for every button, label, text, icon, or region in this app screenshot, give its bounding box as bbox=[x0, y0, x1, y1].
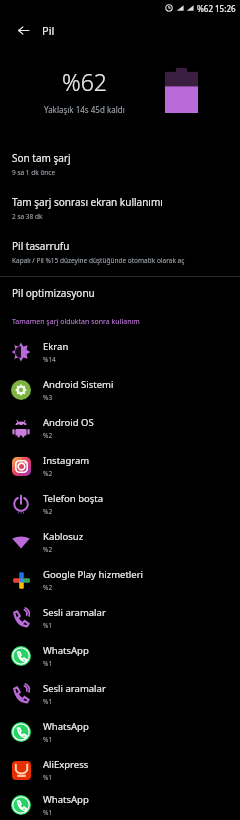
button[interactable]: Sesli aramalar bbox=[0, 599, 240, 637]
staticText: Pil tasarrufu bbox=[12, 239, 70, 253]
button[interactable]: Tam şarj sonrası ekran kullanımı bbox=[0, 186, 240, 230]
staticText: %62 bbox=[62, 66, 107, 97]
staticText: Kablosuz bbox=[43, 530, 84, 543]
button[interactable]: Ekran bbox=[0, 333, 240, 371]
staticText: Pil optimizasyonu bbox=[12, 286, 95, 300]
staticText: Sesli aramalar bbox=[43, 606, 106, 619]
staticText: %14 bbox=[43, 355, 56, 364]
button[interactable]: Android OS bbox=[0, 409, 240, 447]
button[interactable]: AliExpress bbox=[0, 751, 240, 789]
staticText: %1 bbox=[43, 773, 53, 782]
staticText: Yaklaşık 14s 45d kaldı bbox=[44, 104, 125, 115]
staticText: Ekran bbox=[43, 340, 69, 353]
staticText: Tam şarj sonrası ekran kullanımı bbox=[12, 195, 163, 209]
staticText: %2 bbox=[43, 583, 53, 592]
button[interactable]: Pil tasarrufu bbox=[0, 230, 240, 274]
staticText: %1 bbox=[43, 659, 53, 668]
staticText: Son tam şarj bbox=[12, 151, 71, 165]
staticText: %62 15:26 bbox=[197, 3, 236, 14]
button[interactable]: Android Sistemi bbox=[0, 371, 240, 409]
staticText: %3 bbox=[43, 393, 53, 402]
staticText: AliExpress bbox=[43, 758, 89, 771]
staticText: Sesli aramalar bbox=[43, 682, 106, 695]
button[interactable]: WhatsApp bbox=[0, 789, 240, 820]
staticText: Google Play hizmetleri bbox=[43, 568, 144, 581]
staticText: 2 sa 38 dk bbox=[12, 212, 43, 221]
staticText: %2 bbox=[43, 545, 53, 554]
staticText: WhatsApp bbox=[43, 644, 89, 657]
staticText: %1 bbox=[43, 735, 53, 744]
staticText: %1 bbox=[43, 621, 53, 630]
button[interactable]: Pil optimizasyonu bbox=[0, 277, 240, 309]
button[interactable]: Son tam şarj bbox=[0, 142, 240, 186]
button[interactable]: WhatsApp bbox=[0, 637, 240, 675]
button[interactable]: Instagram bbox=[0, 447, 240, 485]
staticText: %2 bbox=[43, 431, 53, 440]
staticText: WhatsApp bbox=[43, 793, 89, 806]
button[interactable]: WhatsApp bbox=[0, 713, 240, 751]
staticText: Kapalı / Pil %15 düzeyine düştüğünde oto… bbox=[12, 256, 185, 265]
button[interactable]: Google Play hizmetleri bbox=[0, 561, 240, 599]
staticText: 9 sa 1 dk önce bbox=[12, 168, 56, 177]
staticText: %1 bbox=[43, 808, 53, 817]
button[interactable]: Kablosuz bbox=[0, 523, 240, 561]
staticText: Tamamen şarj olduktan sonra kullanım bbox=[12, 317, 140, 327]
staticText: WhatsApp bbox=[43, 720, 89, 733]
button[interactable]: Sesli aramalar bbox=[0, 675, 240, 713]
staticText: Telefon boşta bbox=[43, 492, 104, 505]
staticText: %2 bbox=[43, 469, 53, 478]
staticText: Instagram bbox=[43, 454, 90, 467]
staticText: %1 bbox=[43, 697, 53, 706]
button[interactable]: Telefon boşta bbox=[0, 485, 240, 523]
staticText: Pil bbox=[42, 23, 55, 38]
button[interactable]: Geri bbox=[12, 19, 34, 41]
staticText: Android Sistemi bbox=[43, 378, 114, 391]
staticText: %2 bbox=[43, 507, 53, 516]
staticText: Android OS bbox=[43, 416, 94, 429]
